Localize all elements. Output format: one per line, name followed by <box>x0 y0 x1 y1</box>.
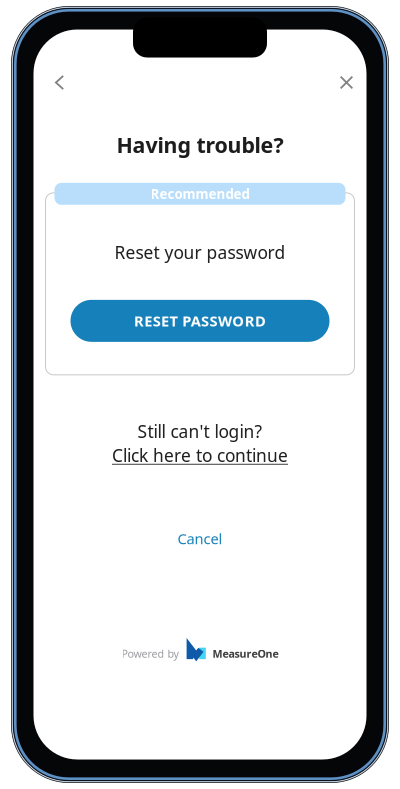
staticText: Recommended <box>150 185 249 203</box>
staticText: Reset your password <box>114 241 285 264</box>
staticText: Cancel <box>177 529 222 548</box>
button[interactable]: Back <box>38 63 80 101</box>
staticText: Click here to continue <box>112 444 288 467</box>
staticText: MeasureOne <box>212 646 278 661</box>
button[interactable]: Cancel <box>177 529 222 548</box>
staticText: Having trouble? <box>116 130 283 159</box>
button[interactable]: RESET PASSWORD <box>70 300 329 342</box>
staticText: Powered by <box>121 646 178 661</box>
staticText: Still can't login? <box>137 420 262 443</box>
staticText: RESET PASSWORD <box>134 311 266 331</box>
button[interactable]: Click here to continue <box>112 444 288 467</box>
button[interactable]: Close <box>326 63 366 101</box>
